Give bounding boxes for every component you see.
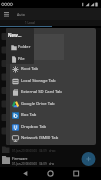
staticText: Auto (17, 12, 25, 17)
button[interactable] (0, 167, 33, 180)
button[interactable]: Root Tab (6, 63, 96, 75)
staticText: New... (8, 32, 22, 38)
button[interactable]: Network (SMB) Tab (6, 132, 96, 144)
button[interactable]: Dropbox Tab (6, 121, 96, 133)
staticText: 01-Jan-20 08:00:00 04:09 drw (12, 162, 55, 166)
button[interactable]: Local Storage Tab (6, 75, 96, 87)
staticText: Google Drive Tab (21, 101, 55, 107)
staticText: External SD Card Tab (21, 89, 62, 95)
staticText: Box Tab (21, 112, 37, 118)
button[interactable]: Box Tab (6, 109, 96, 121)
staticText: 01-Jan-20 08:00:00 04:09 drwx (12, 149, 56, 153)
button[interactable]: External SD Card Tab (6, 86, 96, 98)
staticText: Dropbox Tab (21, 124, 47, 130)
button[interactable] (67, 167, 101, 180)
button[interactable]: Google Drive Tab (6, 98, 96, 110)
staticText: Folder (18, 44, 31, 50)
staticText: 1 Local (25, 21, 35, 25)
staticText: Local Storage Tab (21, 78, 56, 84)
button[interactable]: File (6, 53, 34, 64)
button[interactable]: Auto (0, 8, 101, 20)
button[interactable]: Folder (6, 41, 34, 52)
button[interactable]: Firmware (12, 156, 28, 161)
button[interactable] (33, 167, 67, 180)
staticText: File (18, 56, 25, 62)
staticText: Network (SMB) Tab (21, 135, 59, 141)
staticText: Firmware (12, 156, 28, 161)
staticText: Root Tab (21, 66, 39, 72)
button[interactable]: New... (8, 31, 22, 39)
